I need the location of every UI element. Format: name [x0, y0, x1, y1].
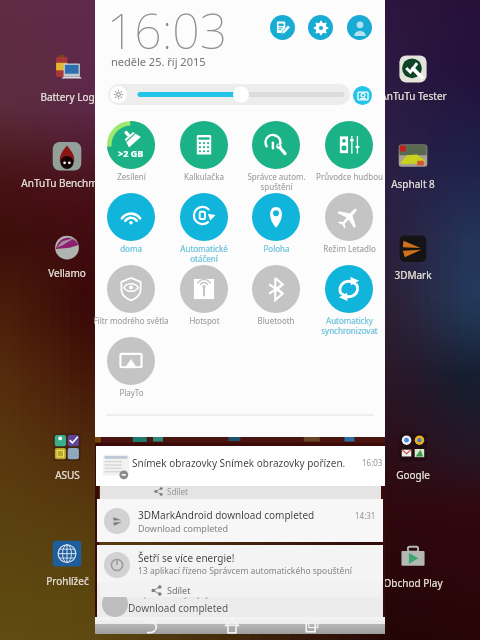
button[interactable]: Back: [140, 617, 162, 634]
staticText: Prohlížeč: [46, 574, 89, 588]
button[interactable]: AnTuTu Benchmark: [17, 140, 117, 190]
staticText: 16:03: [362, 457, 383, 468]
button[interactable]: Průvodce hudbou: [304, 121, 394, 182]
staticText: Správce autom. spuštění: [247, 171, 306, 192]
staticText: Download completed: [128, 601, 229, 615]
staticText: Obchod Play: [383, 576, 443, 590]
staticText: doma: [120, 243, 142, 254]
staticText: Battery Log: [40, 90, 95, 104]
staticText: Automatické otáčení: [180, 243, 228, 264]
button[interactable]: Google: [363, 432, 463, 482]
button[interactable]: Edit note: [270, 15, 295, 40]
button[interactable]: Snímek obrazovky Snímek obrazovky poříze…: [96, 446, 385, 486]
button[interactable]: Poloha: [231, 193, 321, 254]
button[interactable]: Brightness: [108, 84, 350, 105]
button[interactable]: Asphalt 8: [363, 141, 463, 191]
staticText: Sdílet: [167, 486, 188, 497]
button[interactable]: >2 GB: [86, 121, 176, 182]
button[interactable]: Sdílet: [100, 582, 381, 597]
staticText: AnTuTu Tester: [380, 89, 447, 103]
button[interactable]: Vellamo: [17, 230, 117, 280]
staticText: Vellamo: [48, 266, 86, 280]
staticText: Šetří se více energie!: [138, 551, 235, 565]
staticText: Filtr modrého světla: [93, 315, 169, 326]
staticText: Poloha: [263, 243, 290, 254]
button[interactable]: Automaticky synchronizovat: [304, 265, 394, 336]
staticText: Aplikace vybíjející baterii: [137, 585, 252, 599]
button[interactable]: Sdílet: [100, 486, 381, 499]
staticText: ASUS: [55, 468, 80, 482]
staticText: Hotspot: [189, 315, 220, 326]
button[interactable]: Šetří se více energie!: [97, 545, 383, 583]
button[interactable]: Screenshot: [353, 86, 372, 105]
button[interactable]: Hotspot: [159, 265, 249, 326]
button[interactable]: ASUS: [17, 432, 117, 482]
staticText: Zesílení: [117, 171, 146, 182]
staticText: AnTuTu Benchmark: [21, 176, 113, 190]
button[interactable]: Settings: [308, 15, 333, 40]
button[interactable]: Obchod Play: [363, 540, 463, 590]
staticText: 16:03: [107, 0, 228, 63]
button[interactable]: PlayTo: [86, 337, 176, 398]
staticText: Bluetooth: [257, 315, 295, 326]
staticText: 3DMarkAndroid download completed: [138, 508, 315, 522]
button[interactable]: Auto brightness: [110, 86, 127, 103]
staticText: PlayTo: [119, 387, 144, 398]
staticText: Snímek obrazovky Snímek obrazovky poříze…: [132, 456, 346, 470]
staticText: Asphalt 8: [391, 177, 435, 191]
button[interactable]: Správce autom. spuštění: [231, 121, 321, 192]
button[interactable]: AnTuTu Tester: [363, 53, 463, 103]
staticText: 13 aplikací řízeno Správcem automatickéh…: [138, 565, 352, 577]
button[interactable]: Filtr modrého světla: [86, 265, 176, 326]
button[interactable]: doma: [86, 193, 176, 254]
staticText: Kalkulačka: [184, 171, 224, 182]
staticText: neděle 25. říj 2015: [111, 54, 206, 69]
button[interactable]: User profile: [347, 15, 372, 40]
button[interactable]: Bluetooth: [231, 265, 321, 326]
staticText: 14:31: [355, 510, 376, 521]
button[interactable]: Režim Letadlo: [304, 193, 394, 254]
staticText: Automaticky synchronizovat: [321, 315, 378, 336]
staticText: Google: [396, 468, 430, 482]
button[interactable]: Recents: [301, 617, 323, 634]
staticText: Průvodce hudbou: [316, 171, 383, 182]
staticText: Download completed: [138, 522, 229, 534]
button[interactable]: Home: [221, 617, 243, 634]
staticText: Sdílet: [167, 584, 191, 596]
button[interactable]: Automatické otáčení: [159, 193, 249, 264]
button[interactable]: 3DMarkAndroid download completed: [97, 499, 383, 542]
staticText: >2 GB: [118, 147, 144, 159]
staticText: 3DMark: [394, 268, 432, 282]
button[interactable]: Prohlížeč: [17, 538, 117, 588]
button[interactable]: Battery Log: [17, 54, 117, 104]
button[interactable]: 3DMark: [363, 232, 463, 282]
button[interactable]: Kalkulačka: [159, 121, 249, 182]
staticText: Režim Letadlo: [323, 243, 376, 254]
